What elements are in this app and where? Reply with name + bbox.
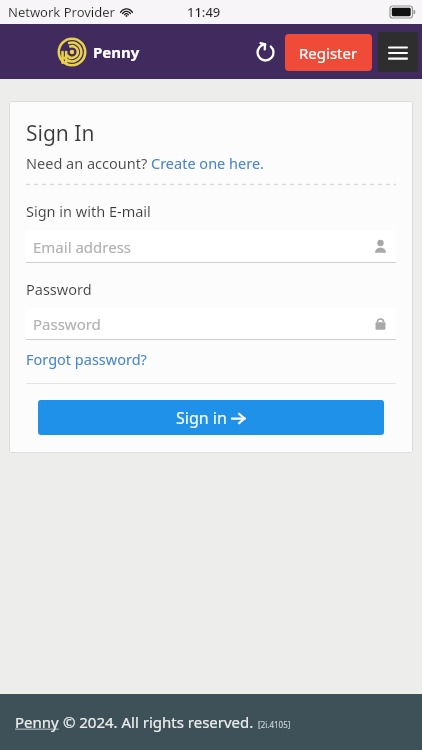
button[interactable]: Penny [15, 712, 59, 732]
button[interactable]: Password [26, 308, 396, 340]
button[interactable]: Menu [378, 32, 418, 72]
staticText: Email address [33, 237, 132, 257]
button[interactable]: Email address [26, 231, 396, 263]
staticText: © 2024. All rights reserved. [59, 712, 258, 732]
button[interactable]: Penny home [57, 37, 140, 67]
button[interactable]: Refresh [245, 32, 285, 72]
staticText: Sign In [26, 119, 95, 148]
button[interactable]: Forgot password? [26, 349, 147, 369]
staticText: 11:49 [187, 3, 221, 21]
button[interactable]: Register [285, 34, 372, 71]
staticText: Sign in [176, 407, 231, 429]
button[interactable]: Create one here. [151, 153, 264, 173]
button[interactable]: Sign in [38, 400, 384, 435]
staticText: Password [33, 314, 101, 334]
staticText: Penny [93, 42, 140, 62]
staticText: [2i.4105] [258, 719, 291, 730]
staticText: Register [299, 43, 358, 63]
staticText: Need an account? [26, 153, 151, 173]
staticText: Sign in with E-mail [26, 201, 151, 221]
staticText: Network Provider [8, 3, 115, 21]
staticText: Password [26, 279, 92, 299]
